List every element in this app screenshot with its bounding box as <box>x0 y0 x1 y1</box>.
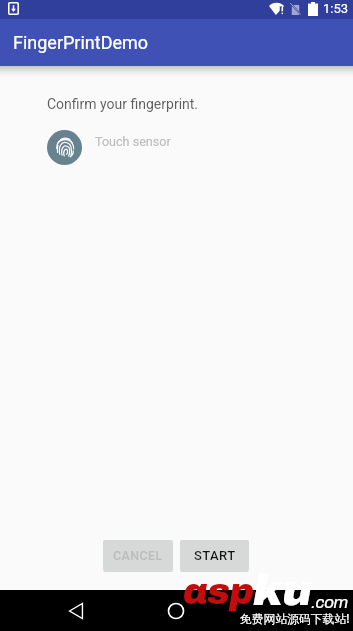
button[interactable]: Home <box>161 596 191 626</box>
button[interactable]: Back <box>61 596 91 626</box>
button[interactable]: START <box>180 540 249 570</box>
staticText: 1:53 <box>323 1 349 16</box>
staticText: START <box>194 548 236 563</box>
button[interactable]: CANCEL <box>103 540 173 570</box>
staticText: .com <box>311 593 349 611</box>
staticText: asp <box>183 572 254 612</box>
staticText: Confirm your fingerprint. <box>47 96 199 112</box>
button[interactable]: Touch fingerprint sensor <box>47 130 82 165</box>
staticText: Touch sensor <box>95 134 171 149</box>
staticText: ku <box>253 565 312 614</box>
staticText: 免费网站源码下载站! <box>240 610 350 626</box>
staticText: FingerPrintDemo <box>13 32 149 53</box>
staticText: CANCEL <box>113 548 163 563</box>
